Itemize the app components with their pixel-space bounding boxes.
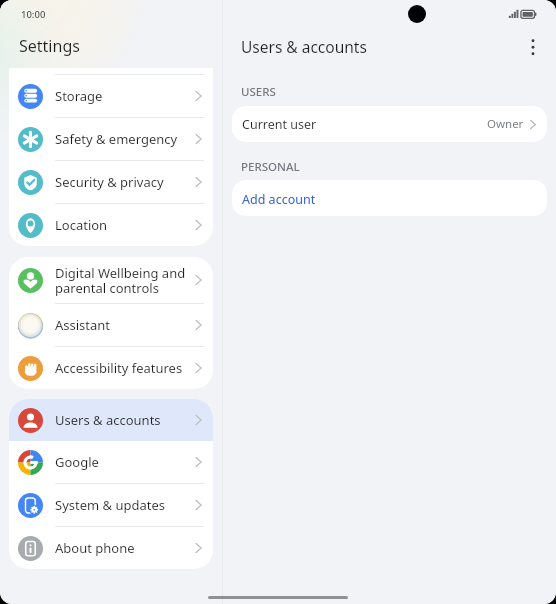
staticText: Accessibility features bbox=[55, 359, 190, 377]
staticText: About phone bbox=[55, 539, 190, 557]
staticText: Users & accounts bbox=[55, 411, 190, 429]
staticText: Users & accounts bbox=[241, 36, 518, 57]
staticText: System & updates bbox=[55, 496, 190, 514]
button[interactable]: About phone bbox=[9, 527, 213, 569]
staticText: Add account bbox=[242, 191, 316, 208]
button[interactable]: System & updates bbox=[9, 484, 213, 527]
staticText: Security & privacy bbox=[55, 173, 190, 191]
button[interactable]: Storage bbox=[9, 75, 213, 118]
button[interactable]: Safety & emergency bbox=[9, 118, 213, 161]
button[interactable]: Add account bbox=[232, 180, 547, 216]
staticText: 10:00 bbox=[21, 8, 46, 21]
staticText: Digital Wellbeing and parental controls bbox=[55, 264, 190, 297]
button[interactable]: Digital Wellbeing and parental controls bbox=[9, 257, 213, 304]
staticText: Safety & emergency bbox=[55, 130, 190, 148]
button[interactable]: Security & privacy bbox=[9, 161, 213, 204]
staticText: Assistant bbox=[55, 316, 190, 334]
button[interactable]: More options bbox=[518, 31, 548, 61]
button[interactable]: Current user bbox=[232, 106, 547, 142]
staticText: USERS bbox=[241, 84, 276, 100]
staticText: Owner bbox=[487, 116, 524, 132]
button[interactable]: Users & accounts bbox=[9, 399, 213, 441]
staticText: Location bbox=[55, 216, 190, 234]
staticText: Current user bbox=[242, 116, 487, 133]
button[interactable]: Accessibility features bbox=[9, 347, 213, 389]
staticText: PERSONAL bbox=[241, 159, 300, 175]
staticText: Google bbox=[55, 453, 190, 471]
staticText: Settings bbox=[19, 35, 80, 57]
button[interactable]: Google bbox=[9, 441, 213, 484]
button[interactable]: Location bbox=[9, 204, 213, 246]
staticText: Storage bbox=[55, 87, 190, 105]
button[interactable]: Assistant bbox=[9, 304, 213, 347]
